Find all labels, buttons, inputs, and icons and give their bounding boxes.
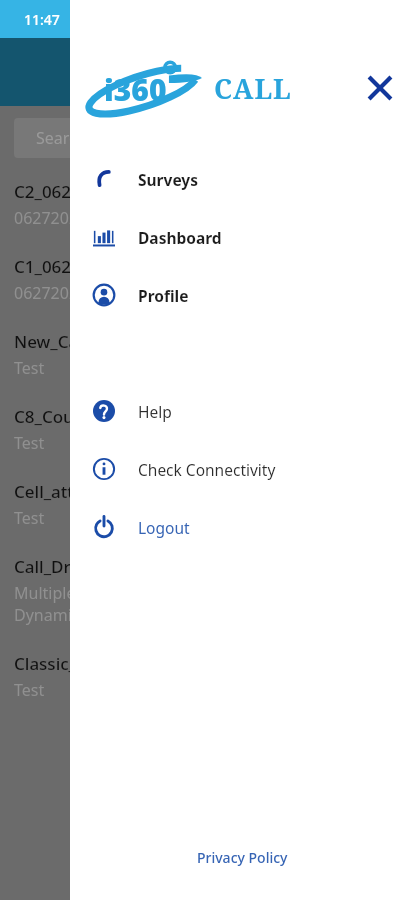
button[interactable]: Profile	[70, 266, 415, 324]
staticText: C2_06272022_Test	[14, 180, 160, 203]
staticText: 06272022	[14, 207, 88, 229]
staticText: Classic_Test	[14, 652, 109, 675]
button[interactable]: Logout	[70, 498, 415, 556]
staticText: New_Call_Test	[14, 330, 128, 353]
button[interactable]: Dashboard	[70, 208, 415, 266]
staticText: C1_06272022_Test	[14, 255, 160, 278]
staticText: Cell_attach_Test	[14, 480, 143, 503]
staticText: Help	[138, 401, 172, 422]
staticText: Test	[14, 507, 45, 529]
button[interactable]: Help	[70, 382, 415, 440]
button[interactable]: Check Connectivity	[70, 440, 415, 498]
staticText: Search	[36, 127, 87, 149]
staticText: 06272022	[14, 282, 88, 304]
button[interactable]: Surveys	[70, 150, 415, 208]
staticText: Logout	[138, 517, 190, 538]
staticText: Surveys	[138, 169, 198, 190]
staticText: Call_Drop_Test	[14, 555, 132, 578]
button[interactable]: Close	[353, 61, 407, 115]
staticText: Test	[14, 432, 45, 454]
staticText: C8_Country_Test	[14, 405, 148, 428]
staticText: i360	[104, 69, 167, 110]
staticText: Multiple Dynamic	[14, 582, 80, 626]
button[interactable]: Privacy Policy	[70, 826, 415, 888]
staticText: Profile	[138, 285, 189, 306]
staticText: Privacy Policy	[197, 848, 288, 867]
staticText: Dashboard	[138, 227, 222, 248]
staticText: 11:47	[24, 10, 60, 29]
staticText: CALL	[214, 70, 292, 107]
staticText: Test	[14, 679, 45, 701]
staticText: Check Connectivity	[138, 459, 276, 480]
staticText: Test	[14, 357, 45, 379]
